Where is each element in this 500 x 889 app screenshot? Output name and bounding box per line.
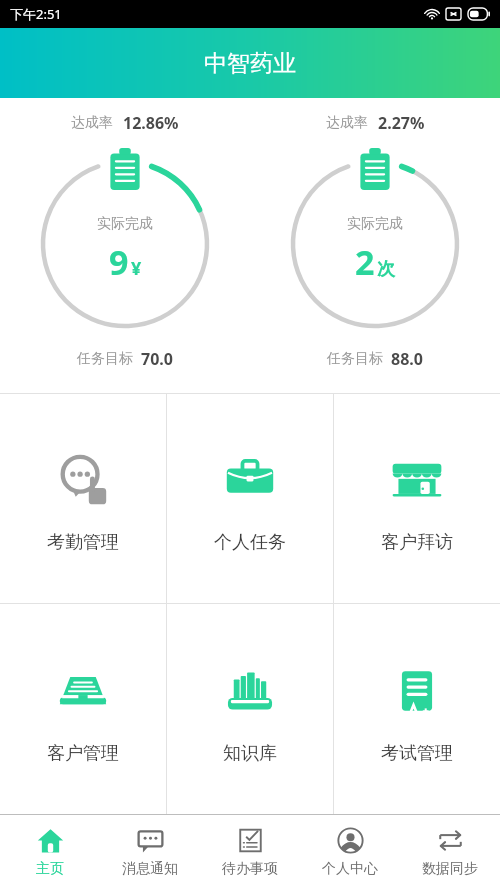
staticText: 次 (377, 258, 395, 281)
button[interactable]: 待办事项 (200, 815, 300, 889)
staticText: 2.27% (378, 112, 425, 134)
staticText: 客户拜访 (381, 531, 453, 554)
staticText: 消息通知 (122, 860, 178, 878)
staticText: 待办事项 (222, 860, 278, 878)
staticText: 中智药业 (204, 49, 296, 78)
button[interactable]: 主页 (0, 815, 100, 889)
button[interactable]: 数据同步 (400, 815, 500, 889)
staticText: 实际完成 (347, 215, 403, 233)
button[interactable]: 客户拜访 (334, 394, 500, 603)
button[interactable]: 个人中心 (300, 815, 400, 889)
button[interactable]: 消息通知 (100, 815, 200, 889)
staticText: 2 (355, 239, 375, 285)
staticText: 客户管理 (47, 742, 119, 765)
staticText: ¥ (131, 256, 142, 281)
staticText: 9 (109, 239, 129, 285)
button[interactable]: 个人任务 (167, 394, 333, 603)
staticText: 12.86% (123, 112, 179, 134)
button[interactable]: 知识库 (167, 604, 333, 814)
staticText: 主页 (36, 860, 64, 878)
button[interactable]: 考试管理 (334, 604, 500, 814)
button[interactable]: 客户管理 (0, 604, 166, 814)
staticText: 88.0 (391, 348, 423, 370)
staticText: 个人中心 (322, 860, 378, 878)
staticText: 实际完成 (97, 215, 153, 233)
staticText: 考试管理 (381, 742, 453, 765)
staticText: 数据同步 (422, 860, 478, 878)
staticText: 个人任务 (214, 531, 286, 554)
staticText: 考勤管理 (47, 531, 119, 554)
staticText: 知识库 (223, 742, 277, 765)
staticText: 下午2:51 (10, 5, 62, 23)
staticText: 70.0 (141, 348, 173, 370)
staticText: 达成率 (326, 114, 368, 132)
button[interactable]: 考勤管理 (0, 394, 166, 603)
staticText: 任务目标 (327, 350, 383, 368)
staticText: 任务目标 (77, 350, 133, 368)
staticText: 达成率 (71, 114, 113, 132)
